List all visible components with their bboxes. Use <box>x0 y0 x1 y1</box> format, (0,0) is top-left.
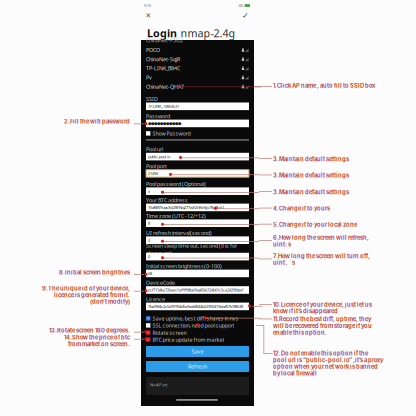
staticText: 3.Maintain default settings <box>273 172 349 179</box>
staticText: 3.Maintain default settings <box>273 189 349 195</box>
staticText: ●●●●●●●●●●● <box>148 121 181 126</box>
staticText: Pool port <box>146 163 167 170</box>
button[interactable]: ChinaNet-SqjR <box>146 54 249 64</box>
staticText: ✓ <box>147 337 150 342</box>
staticText: ✓ <box>147 330 150 335</box>
staticText: Rotate screen <box>152 329 186 336</box>
staticText: 0 <box>148 254 150 259</box>
button[interactable]: ✓ <box>146 337 249 342</box>
staticText: know if it’s disappeared <box>273 308 338 315</box>
button[interactable]: POCO <box>146 45 249 55</box>
staticText: 21496 <box>148 171 158 176</box>
staticText: 11.Record the best diff, uptime, they <box>273 316 371 323</box>
button[interactable]: Close <box>144 11 153 20</box>
staticText: from market on screen. <box>68 341 130 347</box>
staticText: Pool password (Optional) <box>146 180 206 187</box>
staticText: 7.How long the screen will turn off, <box>273 253 370 259</box>
button[interactable]: ✓ <box>146 316 249 321</box>
staticText: ChinaNet-F5G2 <box>146 37 183 44</box>
staticText: ChinaNet-SqjR <box>146 56 180 63</box>
staticText: 16dK85YuqsXvJ2WNqZ7TwEZnNnSJx78xPkvU <box>148 205 224 210</box>
staticText: ✓ <box>242 11 249 20</box>
staticText: Licence <box>146 296 165 303</box>
staticText: ✓ <box>147 316 150 321</box>
staticText: SSID <box>146 95 158 103</box>
staticText: 13.Rotate screen 180 degrees. <box>49 327 130 334</box>
button[interactable]: Refresh <box>146 361 249 372</box>
staticText: 5.Change it to your local zone <box>273 221 357 228</box>
staticText: 2 <box>148 237 150 243</box>
staticText: Save <box>191 348 203 355</box>
staticText: BTC price update from market <box>152 336 224 343</box>
staticText: option when your net work is banned <box>273 363 378 370</box>
staticText: SSL connection, need pool support <box>152 322 234 329</box>
staticText: 9.The unique id of your device, <box>42 285 130 292</box>
button[interactable]: ✓ <box>146 330 249 335</box>
staticText: uint: s <box>273 241 291 248</box>
staticText: ChinaNet-QHA7 <box>146 83 184 90</box>
staticText: Show Password <box>152 130 190 137</box>
button[interactable]: Save <box>146 346 249 357</box>
staticText: 8 <box>148 220 150 226</box>
staticText: UI refresh interval(second) <box>146 229 212 236</box>
staticText: x <box>148 188 150 194</box>
staticText: (don’t modify) <box>90 298 130 305</box>
staticText: ecf7134be72baee1aYYf98bd1ba85fa724b01c5c… <box>148 287 243 293</box>
staticText: public-pool.io <box>148 154 170 159</box>
staticText: 3.Maintain default settings <box>273 156 349 162</box>
staticText: POCO <box>146 46 160 54</box>
staticText: will be recovered from storage if you <box>273 322 372 329</box>
staticText: 9:15 <box>144 3 151 8</box>
staticText: Login <box>147 26 177 40</box>
staticText: 4.Change it to yours <box>273 205 330 212</box>
staticText: No AP set <box>150 382 167 387</box>
staticText: 4G <box>238 3 243 8</box>
staticText: licence is generated from it. <box>54 292 130 298</box>
staticText: Pool url <box>146 146 163 153</box>
staticText: Your BTC address <box>146 197 188 204</box>
staticText: by local firewall <box>273 370 317 377</box>
staticText: 10.Licence of your device, just let us <box>273 301 372 308</box>
staticText: DeviceCode <box>146 279 175 286</box>
staticText: 12.Do not enable this option if the <box>273 350 368 357</box>
staticText: Password <box>146 113 170 120</box>
staticText: TP-LINK_B84C <box>146 65 180 72</box>
staticText: 14.Show the price of btc <box>64 334 130 341</box>
staticText: Save uptime, best diff, shares in nvs <box>152 315 238 322</box>
button[interactable]: SSL connection, need pool support <box>146 323 249 328</box>
staticText: Screen sleep time out, second (0 is for … <box>146 242 237 256</box>
staticText: 68 <box>148 271 152 276</box>
staticText: Pv <box>146 74 152 81</box>
staticText: nmap-2.4g <box>181 26 236 40</box>
button[interactable]: ChinaNet-QHA7 <box>146 82 249 91</box>
staticText: TP-LINK_74864531 <box>148 104 179 109</box>
button[interactable]: TP-LINK_B84C <box>146 64 249 73</box>
staticText: 1.Click AP name , auto fill to SSID box <box>273 82 375 89</box>
staticText: ✕ <box>145 12 151 19</box>
staticText: Initial screen brightness(0-100) <box>146 263 222 270</box>
staticText: 8.Initial screen brightnes <box>59 269 130 276</box>
staticText: Refresh <box>188 363 207 370</box>
button[interactable]: Pv <box>146 73 249 82</box>
button[interactable]: Show Password <box>146 131 249 136</box>
staticText: 7ba95f4c2c5d7fff94d5a9aaf4844b22950419eb… <box>148 304 243 309</box>
staticText: pool url is “public-pool.io” ,it’s a pro… <box>273 357 383 363</box>
staticText: 6.How long the screen will refresh, <box>273 234 369 241</box>
staticText: Time zone (UTC -12/+12) <box>146 212 206 219</box>
button[interactable]: Confirm <box>241 11 250 20</box>
staticText: 2.Fill the wifi password <box>64 118 130 125</box>
staticText: enable this option. <box>273 329 327 336</box>
staticText: uint、 s <box>273 259 295 266</box>
